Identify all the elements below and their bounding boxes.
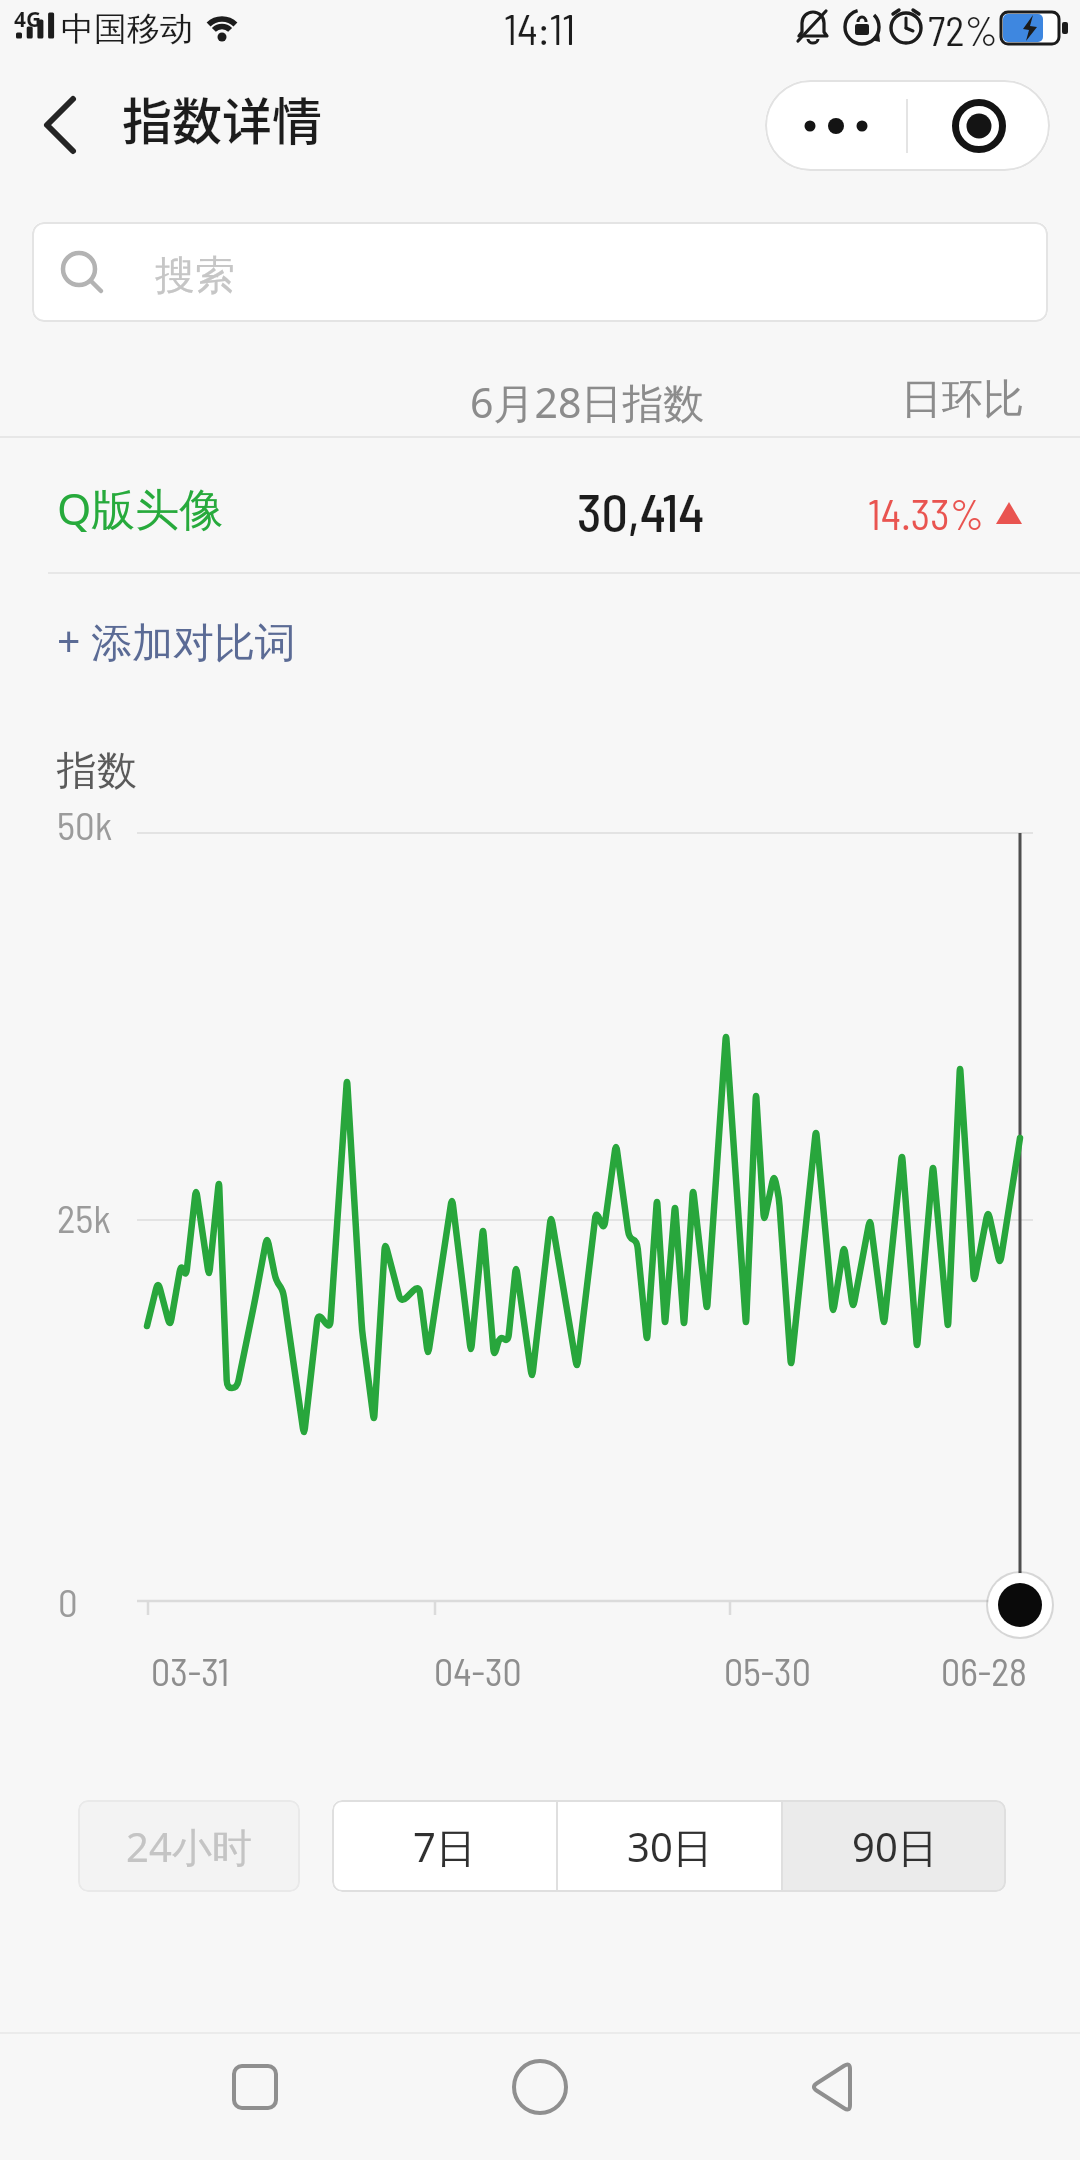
staticText: 30日 xyxy=(627,1819,713,1874)
staticText: 30,414 xyxy=(577,480,705,542)
staticText: 05-30 xyxy=(724,1648,811,1694)
staticText: 6月28日指数 xyxy=(470,374,705,430)
staticText: 4G xyxy=(14,5,42,34)
staticText: 25k xyxy=(57,1194,111,1241)
staticText: 指数详情 xyxy=(122,82,322,154)
button[interactable]: Q版头像 xyxy=(0,438,1080,572)
button[interactable] xyxy=(765,80,906,171)
button[interactable]: 90日 xyxy=(783,1800,1006,1892)
staticText: 中国移动 xyxy=(61,8,193,50)
button[interactable] xyxy=(908,80,1050,171)
staticText: + 添加对比词 xyxy=(57,613,297,669)
button[interactable]: 24小时 xyxy=(78,1800,300,1892)
staticText: 0 xyxy=(58,1578,78,1625)
button[interactable] xyxy=(771,2027,891,2147)
staticText: 04-30 xyxy=(434,1648,522,1694)
button[interactable] xyxy=(20,85,100,165)
staticText: Q版头像 xyxy=(57,478,224,538)
staticText: 90日 xyxy=(852,1819,938,1874)
staticText: 50k xyxy=(57,801,113,848)
button[interactable]: 30日 xyxy=(558,1800,781,1892)
button[interactable]: + 添加对比词 xyxy=(48,606,368,676)
staticText: 24小时 xyxy=(126,1819,252,1874)
staticText: 03-31 xyxy=(151,1648,230,1694)
staticText: 06-28 xyxy=(941,1648,1027,1694)
button[interactable]: 搜索 xyxy=(32,222,1048,322)
button[interactable] xyxy=(480,2027,600,2147)
staticText: 72% xyxy=(928,5,998,54)
staticText: 14:11 xyxy=(504,2,576,54)
staticText: 7日 xyxy=(413,1819,476,1874)
staticText: 14.33% xyxy=(868,488,984,538)
staticText: 指数 xyxy=(57,745,137,795)
button[interactable] xyxy=(195,2027,315,2147)
button[interactable]: 7日 xyxy=(332,1800,556,1892)
staticText: 搜索 xyxy=(155,250,235,300)
staticText: 日环比 xyxy=(901,374,1024,426)
